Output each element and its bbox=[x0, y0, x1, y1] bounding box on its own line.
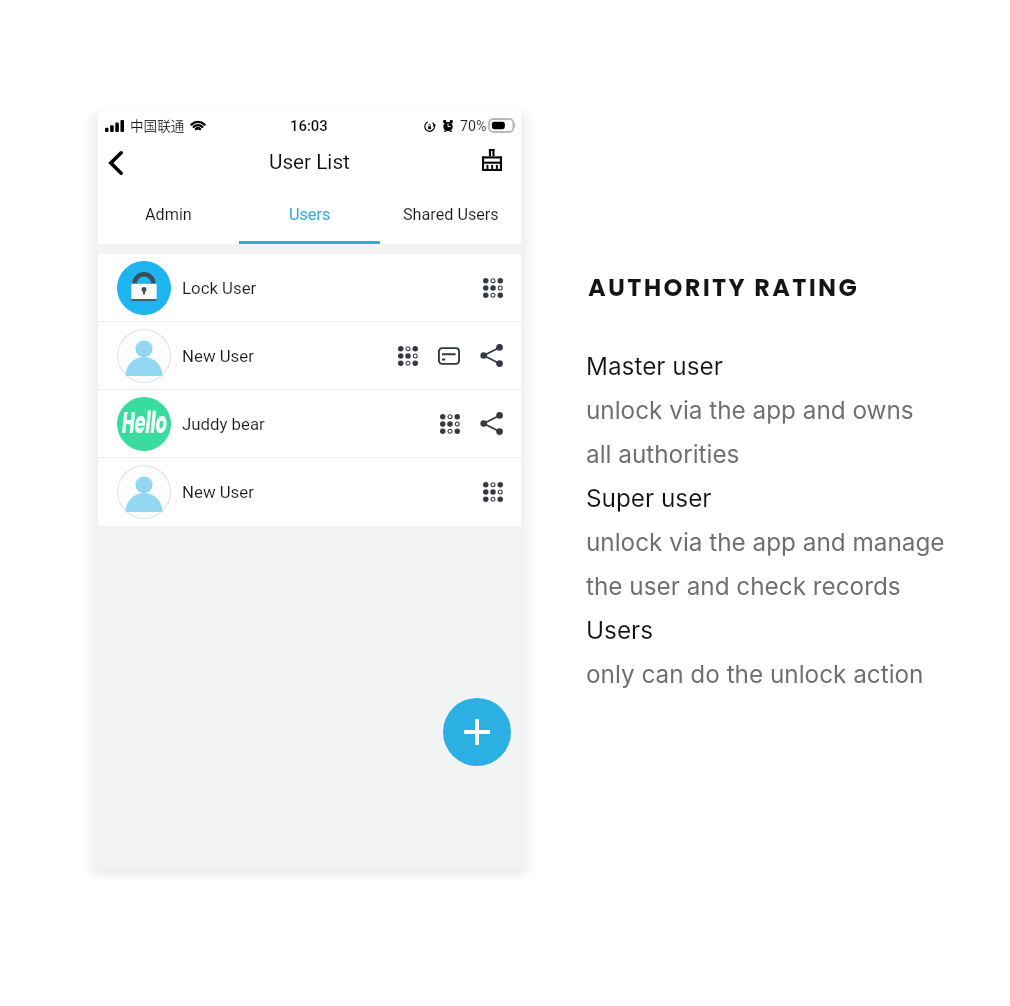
button[interactable]: Passcode bbox=[398, 346, 418, 366]
staticText: Master user bbox=[586, 351, 723, 380]
button[interactable]: Clean records bbox=[473, 141, 511, 179]
button[interactable]: Admin bbox=[98, 200, 239, 244]
staticText: AUTHORITY RATING bbox=[588, 271, 860, 305]
staticText: New User bbox=[182, 482, 254, 502]
staticText: Users bbox=[289, 205, 331, 224]
staticText: unlock via the app and manage bbox=[586, 527, 945, 556]
staticText: Hello bbox=[122, 403, 167, 443]
staticText: 70% bbox=[460, 118, 487, 135]
button[interactable]: Passcode bbox=[483, 278, 503, 298]
staticText: 16:03 bbox=[290, 117, 328, 134]
button[interactable]: Card bbox=[438, 345, 460, 367]
staticText: unlock via the app and owns bbox=[586, 395, 914, 424]
staticText: User List bbox=[269, 150, 350, 174]
staticText: Users bbox=[586, 615, 654, 644]
button[interactable]: Add user bbox=[443, 698, 511, 766]
button[interactable]: Back bbox=[98, 141, 138, 185]
staticText: all authorities bbox=[586, 439, 740, 468]
button[interactable]: New User bbox=[98, 458, 521, 525]
staticText: Admin bbox=[145, 205, 192, 224]
button[interactable]: Share bbox=[480, 344, 503, 367]
button[interactable]: Passcode bbox=[483, 482, 503, 502]
staticText: Lock User bbox=[182, 278, 257, 298]
staticText: 中国联通 bbox=[130, 115, 185, 135]
button[interactable]: Users bbox=[239, 200, 380, 244]
button[interactable]: Share bbox=[480, 412, 503, 435]
staticText: Juddy bear bbox=[182, 414, 265, 434]
staticText: the user and check records bbox=[586, 571, 901, 600]
button[interactable]: Shared Users bbox=[380, 200, 521, 244]
staticText: Super user bbox=[586, 483, 712, 512]
button[interactable]: Hello bbox=[98, 390, 521, 457]
staticText: New User bbox=[182, 346, 254, 366]
staticText: only can do the unlock action bbox=[586, 659, 924, 688]
button[interactable]: New User bbox=[98, 322, 521, 389]
button[interactable]: Passcode bbox=[440, 414, 460, 434]
staticText: Shared Users bbox=[403, 205, 499, 224]
button[interactable]: Lock User bbox=[98, 254, 521, 321]
